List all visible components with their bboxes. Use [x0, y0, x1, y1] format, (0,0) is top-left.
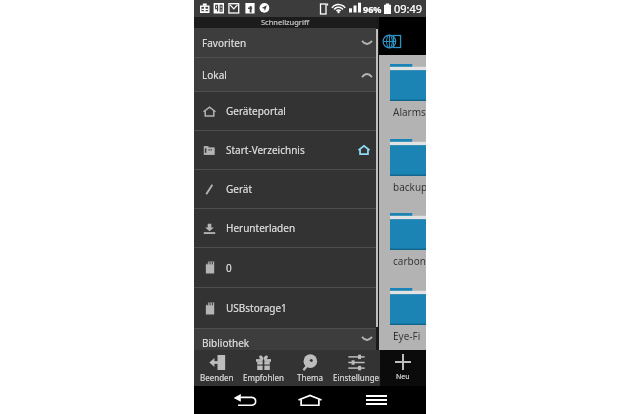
- staticText: 09:49: [394, 1, 423, 16]
- staticText: Thema: [297, 372, 323, 383]
- staticText: Schnellzugriff: [261, 17, 310, 27]
- button[interactable]: backups: [379, 139, 426, 201]
- button[interactable]: Neu: [380, 350, 426, 386]
- button[interactable]: Herunterladen: [194, 209, 376, 247]
- staticText: Bibliothek: [202, 336, 250, 350]
- button[interactable]: Thema: [286, 350, 333, 386]
- staticText: Empfohlen: [243, 372, 284, 383]
- staticText: Start-Verzeichnis: [226, 143, 305, 157]
- button[interactable]: Menu: [353, 386, 399, 414]
- staticText: 0: [226, 261, 232, 275]
- button[interactable]: Alarms: [379, 64, 426, 126]
- staticText: Herunterladen: [226, 221, 296, 235]
- staticText: Lokal: [202, 68, 227, 82]
- staticText: Neu: [396, 372, 410, 382]
- staticText: 96%: [363, 3, 382, 15]
- button[interactable]: Empfohlen: [240, 350, 286, 386]
- staticText: Gerät: [226, 182, 253, 196]
- button[interactable]: Einstellungen: [333, 350, 380, 386]
- button[interactable]: Gerät: [194, 170, 376, 208]
- staticText: USBstorage1: [226, 301, 287, 315]
- staticText: Eye-Fi: [393, 329, 421, 343]
- staticText: Geräteportal: [226, 104, 286, 118]
- staticText: Alarms: [393, 105, 426, 119]
- staticText: Einstellungen: [333, 372, 380, 383]
- button[interactable]: Eye-Fi: [379, 288, 426, 350]
- button[interactable]: USBstorage1: [194, 288, 376, 328]
- button[interactable]: carbon: [379, 213, 426, 275]
- button[interactable]: Lokal: [194, 58, 376, 91]
- button[interactable]: Favoriten: [194, 28, 376, 57]
- button[interactable]: Geräteportal: [194, 92, 376, 130]
- staticText: Beenden: [200, 372, 234, 383]
- button[interactable]: Beenden: [194, 350, 240, 386]
- staticText: backups: [393, 180, 426, 194]
- button[interactable]: Network devices: [382, 32, 404, 50]
- staticText: Favoriten: [202, 36, 247, 50]
- button[interactable]: Start-Verzeichnis: [194, 131, 376, 169]
- button[interactable]: Home: [287, 386, 333, 414]
- staticText: carbon: [393, 254, 426, 268]
- button[interactable]: 0: [194, 248, 376, 287]
- button[interactable]: Back: [221, 386, 267, 414]
- button[interactable]: Bibliothek: [194, 329, 376, 350]
